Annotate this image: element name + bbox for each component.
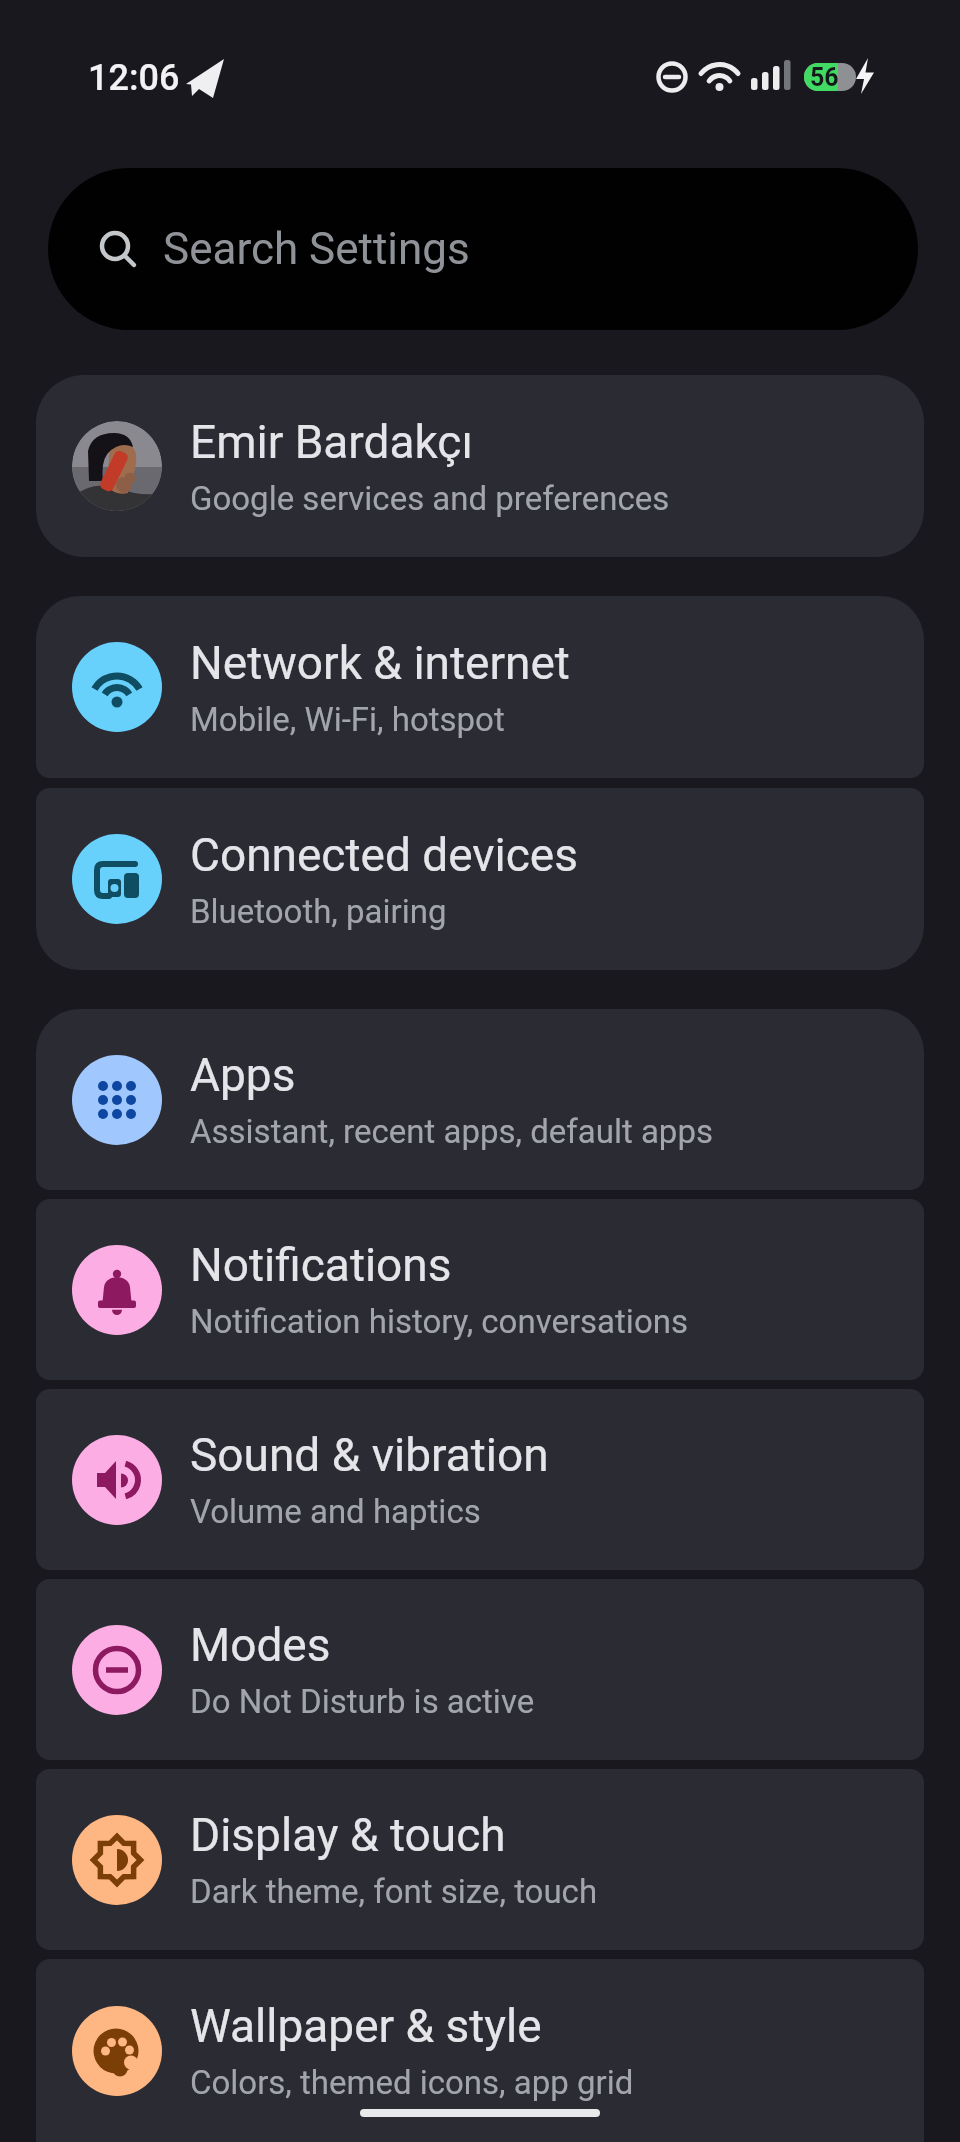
staticText: Notification history, conversations: [190, 1302, 688, 1341]
staticText: Do Not Disturb is active: [190, 1682, 535, 1721]
staticText: Modes: [190, 1618, 331, 1672]
staticText: Colors, themed icons, app grid: [190, 2063, 634, 2102]
staticText: Emir Bardakçı: [190, 415, 473, 469]
staticText: Dark theme, font size, touch: [190, 1872, 598, 1911]
staticText: Bluetooth, pairing: [190, 892, 447, 931]
staticText: Network & internet: [190, 636, 570, 690]
staticText: Google services and preferences: [190, 479, 670, 518]
staticText: 56: [810, 63, 839, 92]
staticText: 12:06: [88, 57, 180, 99]
button[interactable]: Emir Bardakçı: [36, 375, 924, 557]
button[interactable]: Search Settings: [48, 168, 918, 330]
staticText: Search Settings: [163, 223, 470, 275]
button[interactable]: Wallpaper & style: [36, 1959, 924, 2142]
button[interactable]: Modes: [36, 1579, 924, 1760]
staticText: Wallpaper & style: [190, 1999, 542, 2053]
button[interactable]: Network & internet: [36, 596, 924, 778]
button[interactable]: Apps: [36, 1009, 924, 1190]
staticText: Connected devices: [190, 828, 578, 882]
button[interactable]: Connected devices: [36, 788, 924, 970]
button[interactable]: Notifications: [36, 1199, 924, 1380]
button[interactable]: Sound & vibration: [36, 1389, 924, 1570]
staticText: Mobile, Wi-Fi, hotspot: [190, 700, 505, 739]
staticText: Apps: [190, 1048, 296, 1102]
staticText: Volume and haptics: [190, 1492, 481, 1531]
staticText: Assistant, recent apps, default apps: [190, 1112, 713, 1151]
button[interactable]: Display & touch: [36, 1769, 924, 1950]
staticText: Sound & vibration: [190, 1428, 549, 1482]
staticText: Display & touch: [190, 1808, 506, 1862]
staticText: Notifications: [190, 1238, 452, 1292]
